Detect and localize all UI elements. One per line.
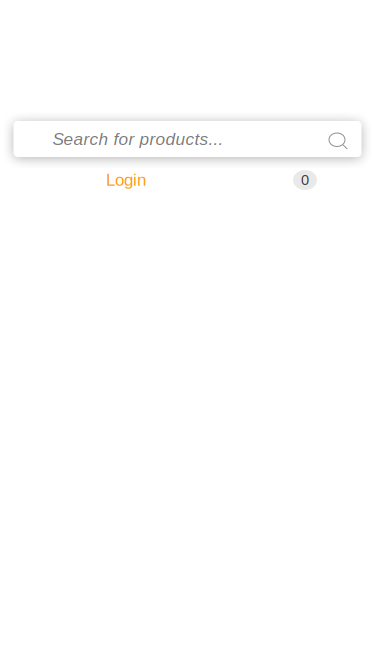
staticText: Search for products... (52, 129, 223, 149)
staticText: 0 (301, 172, 309, 188)
button[interactable]: Login (106, 170, 146, 190)
staticText: Login (106, 170, 146, 189)
button[interactable]: Cart, 0 items (293, 170, 317, 190)
button[interactable]: Search for products... (13, 121, 361, 157)
